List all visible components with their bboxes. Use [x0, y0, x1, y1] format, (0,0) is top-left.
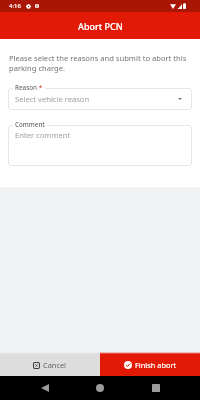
button[interactable]: Back: [34, 377, 56, 399]
staticText: Finish abort: [135, 360, 177, 370]
staticText: Abort PCN: [78, 20, 123, 32]
button[interactable]: Recent apps: [145, 377, 167, 399]
staticText: Comment: [15, 120, 45, 129]
staticText: Select vehicle reason: [15, 94, 90, 104]
button[interactable]: Home: [89, 377, 111, 399]
staticText: Reason *: [15, 83, 43, 92]
button[interactable]: Cancel: [0, 354, 100, 376]
staticText: Cancel: [43, 360, 67, 370]
staticText: Please select the reasons and submit to …: [9, 53, 194, 73]
button[interactable]: Finish abort: [100, 354, 200, 376]
staticText: Enter comment: [15, 130, 71, 140]
staticText: 4:16: [9, 2, 21, 10]
